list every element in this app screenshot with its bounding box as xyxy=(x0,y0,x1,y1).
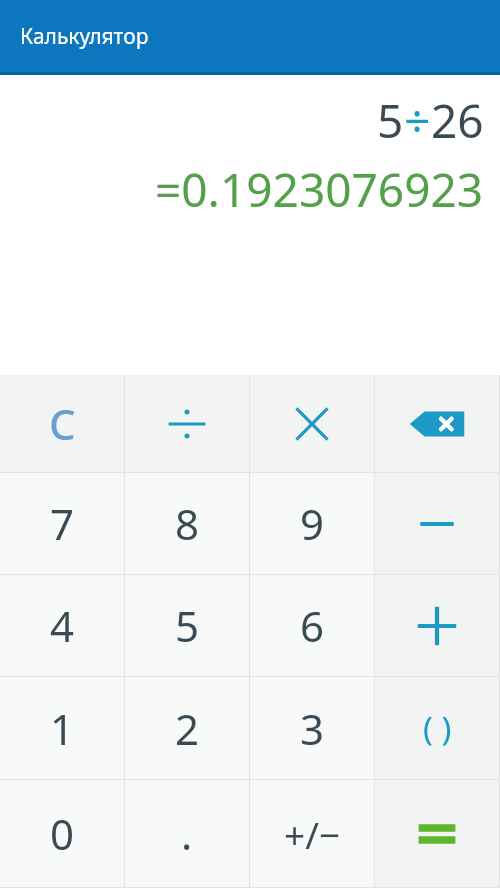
button[interactable]: 5 xyxy=(125,575,249,676)
staticText: . xyxy=(181,805,193,862)
staticText: 0 xyxy=(50,805,75,862)
staticText: 7 xyxy=(50,495,75,552)
staticText: =0.1923076923 xyxy=(155,158,484,221)
button[interactable]: +/− xyxy=(250,780,374,887)
button[interactable]: 8 xyxy=(125,473,249,574)
staticText: 5 xyxy=(175,597,200,654)
staticText: 26 xyxy=(431,89,484,152)
button[interactable]: ( ) xyxy=(375,677,499,779)
staticText: 8 xyxy=(175,495,200,552)
button[interactable]: Minus xyxy=(375,473,499,574)
button[interactable]: Backspace xyxy=(375,375,499,472)
button[interactable]: C xyxy=(0,375,124,472)
button[interactable]: Калькулятор xyxy=(0,0,500,72)
button[interactable]: 3 xyxy=(250,677,374,779)
staticText: 5 xyxy=(377,89,404,152)
staticText: C xyxy=(49,395,76,452)
staticText: Калькулятор xyxy=(20,22,149,51)
button[interactable]: 6 xyxy=(250,575,374,676)
button[interactable]: 1 xyxy=(0,677,124,779)
staticText: 2 xyxy=(175,700,200,757)
button[interactable]: Equals xyxy=(375,780,499,887)
button[interactable]: 7 xyxy=(0,473,124,574)
staticText: 6 xyxy=(300,597,325,654)
staticText: 3 xyxy=(300,700,325,757)
staticText: 9 xyxy=(300,495,325,552)
button[interactable]: 2 xyxy=(125,677,249,779)
staticText: ÷ xyxy=(404,89,431,152)
staticText: 4 xyxy=(50,597,75,654)
staticText: ( ) xyxy=(423,706,452,751)
button[interactable]: Multiply xyxy=(250,375,374,472)
button[interactable]: 9 xyxy=(250,473,374,574)
staticText: 1 xyxy=(50,700,75,757)
button[interactable]: Plus xyxy=(375,575,499,676)
staticText: +/− xyxy=(284,809,341,859)
button[interactable]: . xyxy=(125,780,249,887)
button[interactable]: Divide xyxy=(125,375,249,472)
button[interactable]: 0 xyxy=(0,780,124,887)
button[interactable]: 4 xyxy=(0,575,124,676)
